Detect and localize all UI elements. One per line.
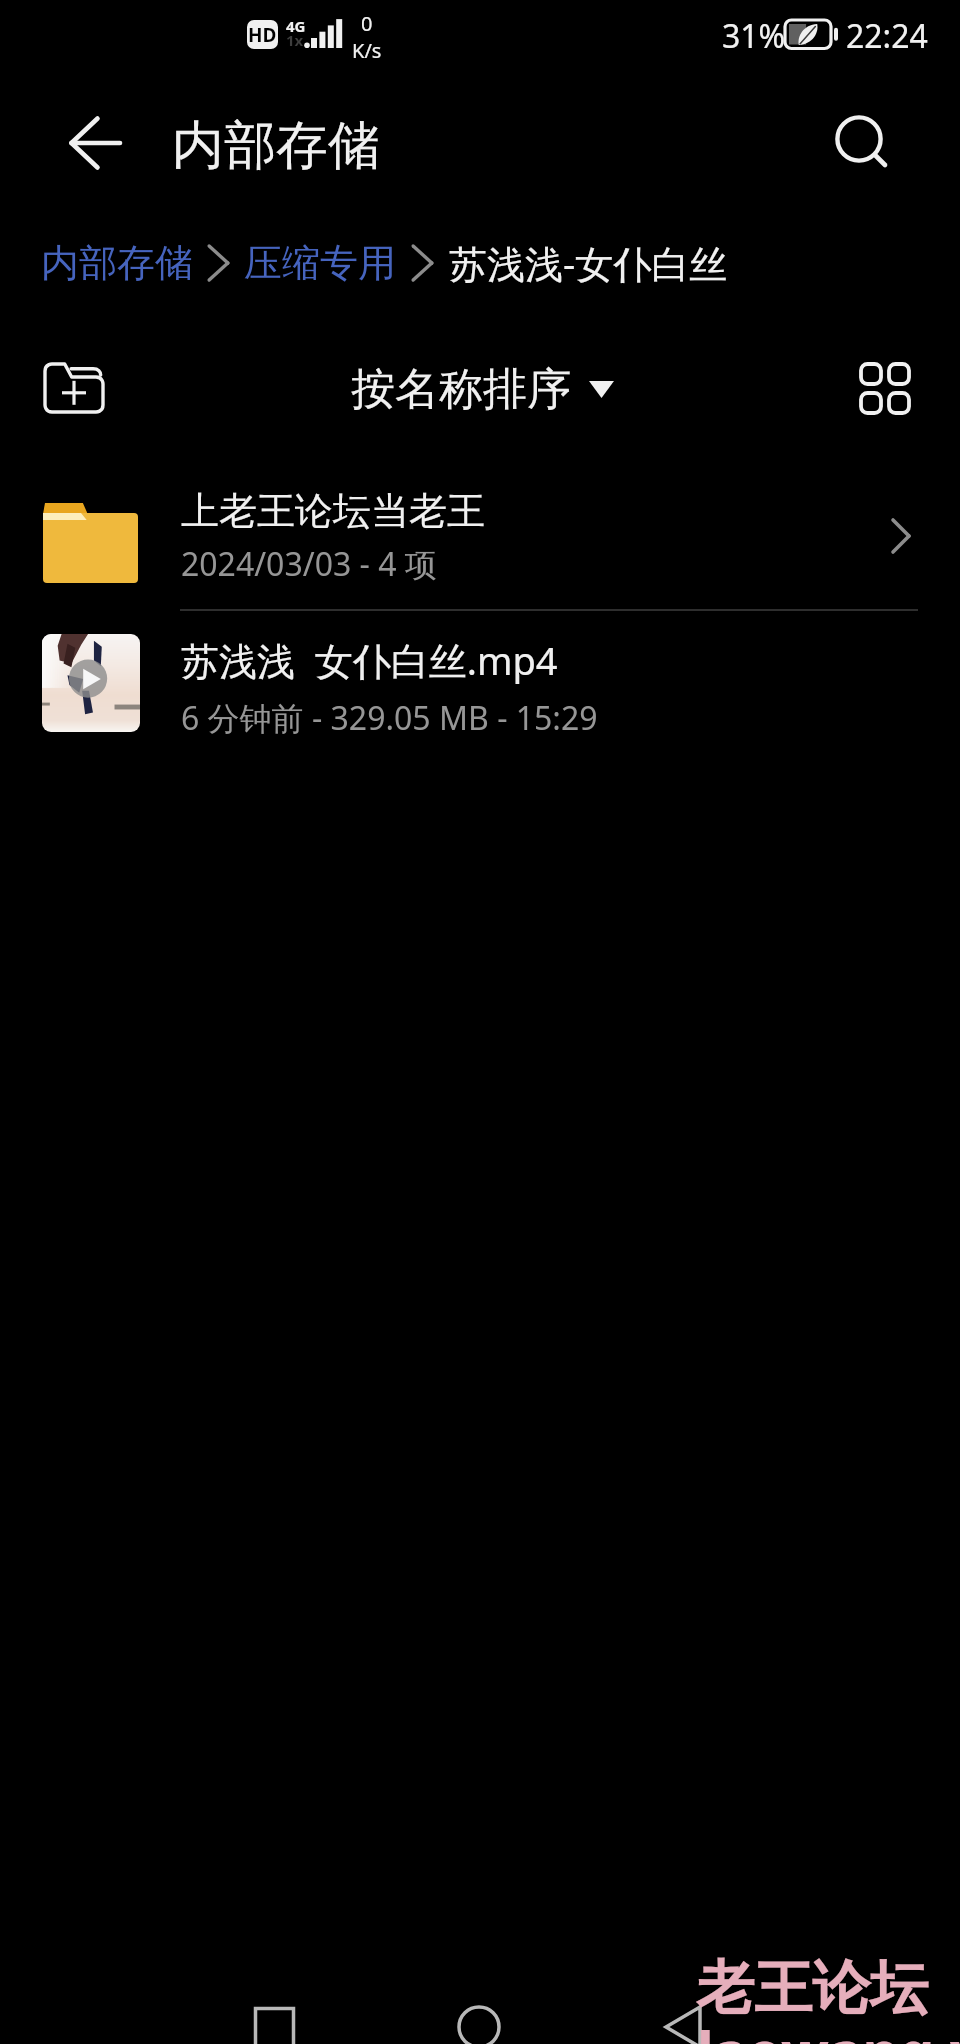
staticText: HD [248,22,277,48]
staticText: 老王论坛 [696,1952,928,2025]
staticText: 内部存储 [172,113,380,179]
staticText: 22:24 [846,14,928,58]
button[interactable]: Recents [234,1987,314,2044]
staticText: laowang.vip [697,2012,960,2044]
staticText: 按名称排序 [351,362,571,417]
button[interactable]: Search [811,91,907,187]
staticText: 4G [286,16,306,36]
staticText: 1x [286,30,304,50]
button[interactable]: 上老王论坛当老王 [0,462,960,609]
staticText: 6 分钟前 - 329.05 MB - 15:29 [181,696,598,740]
button[interactable]: Grid view [840,344,930,434]
button[interactable]: 苏浅浅 女仆白丝.mp4 [0,611,960,758]
staticText: 苏浅浅 女仆白丝.mp4 [181,634,558,686]
button[interactable]: 压缩专用 [244,232,396,294]
staticText: 31% [722,14,786,58]
staticText: 上老王论坛当老王 [181,487,485,535]
button[interactable]: New folder [25,344,123,432]
staticText: 0 [361,10,373,37]
button[interactable]: 按名称排序 [351,350,614,428]
staticText: 苏浅浅-女仆白丝 [449,237,728,289]
staticText: 内部存储 [41,239,193,287]
staticText: 压缩专用 [244,239,396,287]
staticText: K/s [352,37,382,64]
button[interactable]: 内部存储 [41,232,193,294]
button[interactable]: Home [439,1987,519,2044]
button[interactable]: Back [47,95,144,192]
button[interactable]: Back [643,1987,723,2044]
staticText: 2024/03/03 - 4 项 [181,542,437,586]
